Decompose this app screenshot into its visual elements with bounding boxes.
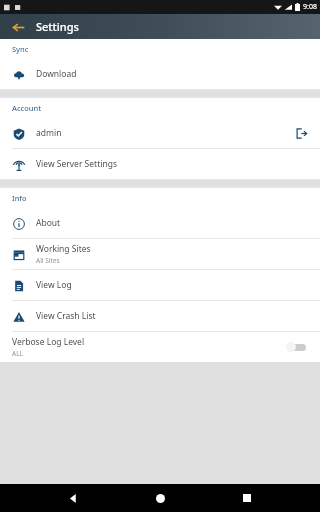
button[interactable]: Recents: [233, 484, 261, 512]
button[interactable]: Back: [8, 17, 28, 37]
button[interactable]: Verbose Log Level: [0, 332, 320, 362]
staticText: About: [36, 217, 61, 229]
button[interactable]: About: [0, 208, 320, 238]
button[interactable]: Home: [146, 484, 174, 512]
staticText: Settings: [36, 19, 79, 34]
button[interactable]: Working Sites: [0, 239, 320, 269]
staticText: 9:08: [303, 2, 317, 12]
button[interactable]: View Server Settings: [0, 149, 320, 179]
button[interactable]: admin: [0, 118, 320, 148]
button[interactable]: Log out: [294, 126, 308, 140]
staticText: View Log: [36, 279, 72, 291]
staticText: View Crash List: [36, 310, 96, 322]
staticText: Verbose Log Level: [12, 336, 85, 348]
staticText: Working Sites: [36, 243, 91, 255]
button[interactable]: Download: [0, 59, 320, 89]
button[interactable]: Back: [59, 484, 87, 512]
staticText: Info: [12, 193, 27, 203]
staticText: Account: [12, 103, 42, 113]
button[interactable]: Verbose Log Level toggle: [286, 340, 308, 354]
staticText: View Server Settings: [36, 158, 117, 170]
button[interactable]: View Log: [0, 270, 320, 300]
staticText: admin: [36, 127, 62, 139]
staticText: Sync: [12, 44, 29, 54]
staticText: Download: [36, 68, 77, 80]
button[interactable]: View Crash List: [0, 301, 320, 331]
staticText: ALL: [12, 349, 23, 358]
staticText: All Sites: [36, 256, 60, 265]
